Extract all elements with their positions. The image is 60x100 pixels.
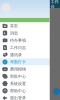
staticText: 费用报销 [10,67,26,72]
button[interactable]: 待办事项 [0,37,49,44]
button[interactable]: 工作日志 [0,44,49,51]
staticText: 通讯录 [10,52,22,57]
staticText: 工作日志 [10,45,26,50]
staticText: 首页 [10,23,18,28]
staticText: 工作台 [51,0,59,9]
staticText: 系统设置 [10,81,26,86]
button[interactable]: 帮助中心 [0,87,49,94]
button[interactable]: 通讯录 [0,51,49,58]
staticText: 审批中心 [10,74,26,79]
button[interactable]: 消息 [0,30,49,37]
button[interactable]: 系统设置 [0,80,49,87]
staticText: 退出登录 [10,95,26,100]
staticText: 待办事项 [10,38,26,43]
button[interactable]: 考勤打卡 [0,58,49,66]
button[interactable]: 审批中心 [0,73,49,80]
button[interactable]: 费用报销 [0,66,49,73]
button[interactable]: 首页 [0,22,49,30]
button[interactable]: 退出登录 [0,94,49,100]
staticText: 消息 [10,31,18,36]
staticText: 考勤打卡 [10,59,26,64]
staticText: 帮助中心 [10,88,26,93]
